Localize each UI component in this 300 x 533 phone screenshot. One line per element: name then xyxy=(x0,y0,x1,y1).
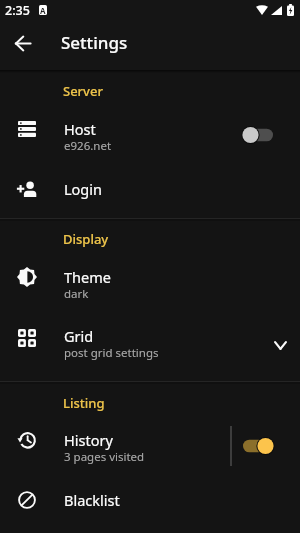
staticText: 2:35 xyxy=(5,2,30,19)
staticText: History xyxy=(64,430,113,450)
button[interactable]: History xyxy=(0,419,300,478)
staticText: 3 pages visited xyxy=(64,449,145,465)
button[interactable]: Expand xyxy=(258,323,300,367)
staticText: Settings xyxy=(61,31,128,54)
staticText: Server xyxy=(63,82,103,100)
button[interactable]: Login xyxy=(0,167,300,211)
button[interactable]: Disabled toggle xyxy=(238,114,278,156)
button[interactable]: Grid xyxy=(0,315,300,374)
staticText: Login xyxy=(64,179,102,199)
button[interactable]: Enabled toggle xyxy=(238,425,278,467)
staticText: Blacklist xyxy=(64,490,120,510)
staticText: post grid settings xyxy=(64,345,159,361)
staticText: Host xyxy=(64,119,96,139)
staticText: Theme xyxy=(64,267,111,287)
staticText: A xyxy=(40,5,46,15)
staticText: dark xyxy=(64,286,89,302)
staticText: e926.net xyxy=(64,138,112,154)
button[interactable]: Theme xyxy=(0,256,300,315)
button[interactable]: Host xyxy=(0,108,300,167)
button[interactable]: Blacklist xyxy=(0,478,300,522)
staticText: Grid xyxy=(64,326,94,346)
button[interactable]: Back xyxy=(3,24,43,62)
staticText: Display xyxy=(63,230,109,248)
staticText: Listing xyxy=(63,394,105,412)
